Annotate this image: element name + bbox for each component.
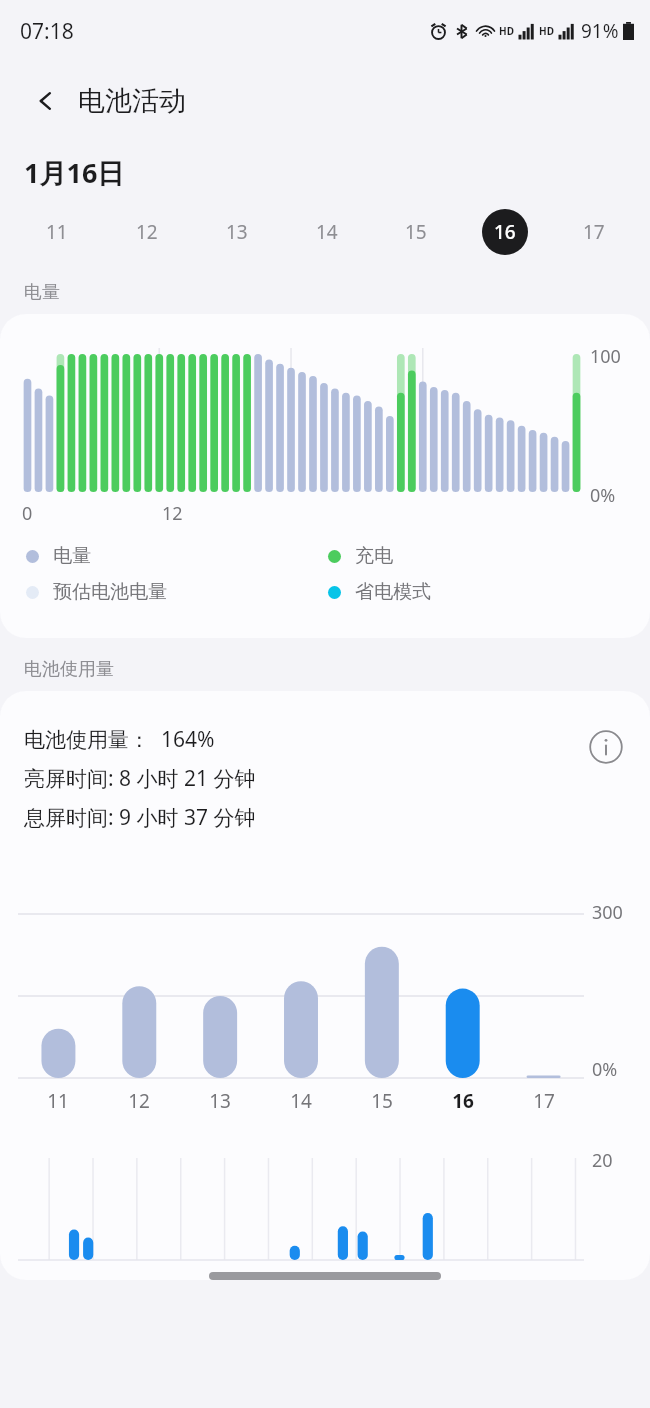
staticText: 亮屏时间: 8 小时 21 分钟 (24, 764, 256, 793)
staticText: 15 (405, 219, 427, 245)
staticText: HD (539, 24, 554, 38)
staticText: 12 (128, 1088, 150, 1114)
staticText: 16 (452, 1088, 474, 1114)
staticText: 14 (316, 219, 338, 245)
staticText: 16 (494, 219, 516, 245)
staticText: 0% (592, 1057, 618, 1082)
button[interactable]: 12 (102, 205, 192, 259)
staticText: 0% (590, 483, 616, 508)
staticText: 充电 (355, 544, 393, 568)
button[interactable]: 17 (549, 205, 638, 259)
staticText: 省电模式 (355, 580, 431, 604)
staticText: 电量 (24, 281, 60, 304)
button[interactable]: 16 (460, 205, 549, 259)
staticText: 11 (46, 219, 68, 245)
staticText: 预估电池电量 (53, 580, 167, 604)
staticText: 12 (136, 219, 158, 245)
button[interactable]: 信息 (584, 725, 628, 769)
button[interactable]: 返回 (24, 79, 68, 123)
staticText: 0 (22, 501, 33, 526)
staticText: 100 (590, 344, 621, 369)
staticText: 13 (226, 219, 248, 245)
staticText: 20 (592, 1148, 613, 1173)
button[interactable]: 11 (12, 205, 102, 259)
staticText: HD (499, 24, 514, 38)
staticText: 电池活动 (78, 84, 186, 118)
staticText: 17 (533, 1088, 555, 1114)
staticText: 13 (209, 1088, 231, 1114)
staticText: 电量 (53, 544, 91, 568)
button[interactable]: 15 (371, 205, 460, 259)
staticText: 1月16日 (24, 154, 125, 191)
button[interactable]: 13 (192, 205, 282, 259)
staticText: 15 (371, 1088, 393, 1114)
staticText: 91% (581, 18, 619, 44)
staticText: 07:18 (20, 17, 74, 46)
staticText: 12 (162, 501, 183, 526)
button[interactable]: 14 (282, 205, 371, 259)
staticText: 14 (290, 1088, 312, 1114)
staticText: 电池使用量： 164% (24, 725, 215, 754)
staticText: 300 (592, 900, 623, 925)
staticText: 电池使用量 (24, 658, 114, 681)
staticText: 17 (583, 219, 605, 245)
staticText: 息屏时间: 9 小时 37 分钟 (24, 803, 256, 832)
staticText: 11 (47, 1088, 69, 1114)
